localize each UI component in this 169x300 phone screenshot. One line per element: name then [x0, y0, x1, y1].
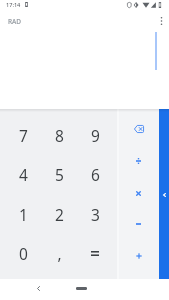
- staticText: 2: [55, 204, 64, 225]
- button[interactable]: 5: [41, 154, 77, 194]
- button[interactable]: 9: [77, 115, 113, 155]
- staticText: 9: [91, 125, 100, 146]
- button[interactable]: Back: [30, 280, 46, 296]
- button[interactable]: 0: [5, 233, 41, 273]
- button[interactable]: Home: [76, 287, 87, 290]
- button[interactable]: 4: [5, 154, 41, 194]
- button[interactable]: 1: [5, 194, 41, 234]
- button[interactable]: Backspace: [118, 113, 159, 145]
- button[interactable]: 6: [77, 154, 113, 194]
- staticText: 17:14: [6, 1, 21, 9]
- button[interactable]: 3: [77, 194, 113, 234]
- button[interactable]: ,: [41, 233, 77, 273]
- staticText: RAD: [8, 17, 22, 26]
- staticText: 6: [91, 164, 100, 185]
- button[interactable]: 2: [41, 194, 77, 234]
- staticText: 8: [55, 125, 64, 146]
- staticText: 1: [19, 204, 28, 225]
- staticText: 0: [19, 243, 28, 264]
- button[interactable]: Multiply: [118, 177, 159, 209]
- button[interactable]: Divide: [118, 145, 159, 177]
- staticText: 7: [19, 125, 28, 146]
- button[interactable]: [77, 233, 113, 273]
- button[interactable]: Subtract: [118, 208, 159, 240]
- button[interactable]: Add: [118, 240, 159, 272]
- staticText: ,: [57, 243, 62, 264]
- button[interactable]: Show advanced pad: [159, 109, 169, 280]
- button[interactable]: 7: [5, 115, 41, 155]
- staticText: 3: [91, 204, 100, 225]
- staticText: 4: [19, 164, 28, 185]
- button[interactable]: More options: [153, 13, 169, 29]
- staticText: 5: [55, 164, 64, 185]
- button[interactable]: 8: [41, 115, 77, 155]
